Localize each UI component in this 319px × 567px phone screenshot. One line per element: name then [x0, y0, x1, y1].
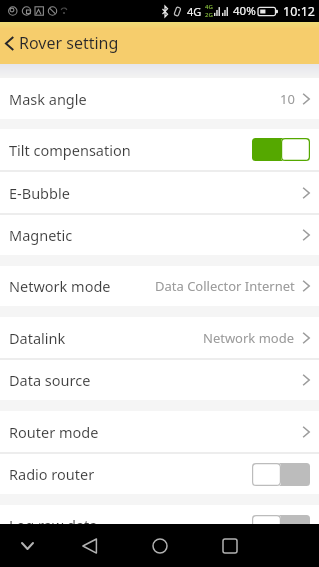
- button[interactable]: Turn on: [252, 515, 310, 524]
- staticText: Radio router: [9, 464, 95, 484]
- staticText: 4G: [187, 4, 202, 19]
- button[interactable]: Network mode: [0, 266, 319, 306]
- button[interactable]: Turn on: [252, 463, 310, 486]
- staticText: 40%: [233, 3, 256, 19]
- staticText: Network mode: [9, 276, 111, 296]
- staticText: Router mode: [9, 422, 99, 442]
- staticText: Magnetic: [9, 225, 73, 245]
- staticText: 10: [280, 90, 295, 108]
- staticText: Data Collector Internet: [155, 277, 295, 295]
- button[interactable]: Hide keyboard: [14, 533, 40, 559]
- staticText: 2G: [205, 11, 213, 19]
- staticText: Network mode: [203, 329, 295, 347]
- button[interactable]: E-Bubble: [0, 172, 319, 213]
- staticText: Tilt compensation: [9, 140, 131, 160]
- staticText: E-Bubble: [9, 183, 70, 203]
- button[interactable]: Log raw data: [0, 505, 319, 524]
- staticText: Rover setting: [19, 32, 119, 54]
- button[interactable]: Radio router: [0, 454, 319, 494]
- button[interactable]: Back: [0, 26, 18, 60]
- staticText: Log raw data: [9, 515, 98, 524]
- button[interactable]: Mask angle: [0, 78, 319, 119]
- button[interactable]: Back: [71, 528, 107, 564]
- staticText: Data source: [9, 370, 91, 390]
- staticText: 10:12: [283, 3, 315, 20]
- button[interactable]: Tilt compensation: [0, 129, 319, 170]
- button[interactable]: Data source: [0, 360, 319, 400]
- staticText: 4G: [205, 3, 213, 11]
- staticText: Mask angle: [9, 89, 87, 109]
- button[interactable]: Magnetic: [0, 215, 319, 255]
- button[interactable]: Router mode: [0, 411, 319, 452]
- button[interactable]: Home: [142, 528, 178, 564]
- button[interactable]: Recent apps: [212, 528, 248, 564]
- button[interactable]: Turn off: [252, 138, 310, 161]
- staticText: Datalink: [9, 328, 66, 348]
- button[interactable]: Datalink: [0, 317, 319, 358]
